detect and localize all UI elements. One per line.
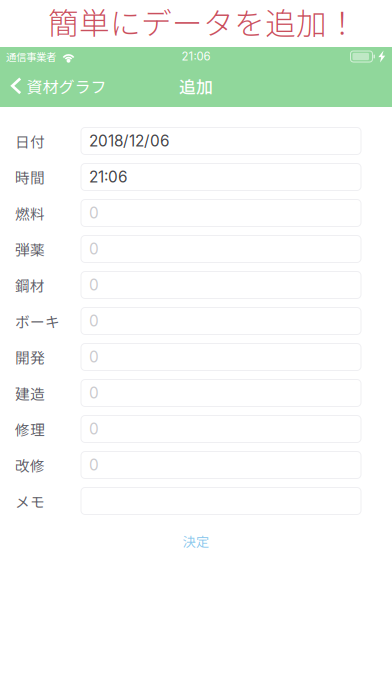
staticText: 修理 — [15, 418, 45, 440]
staticText: 開発 — [15, 346, 45, 368]
button[interactable]: メモ — [0, 483, 392, 519]
staticText: ボーキ — [15, 310, 60, 332]
staticText: 0 — [89, 348, 99, 366]
button[interactable]: 建造 — [0, 375, 392, 411]
button[interactable]: 決定 — [0, 519, 392, 563]
button[interactable]: 日付 — [0, 123, 392, 159]
staticText: 0 — [89, 240, 99, 258]
staticText: 0 — [89, 456, 99, 474]
button[interactable]: 修理 — [0, 411, 392, 447]
button[interactable]: 資材グラフ — [0, 68, 114, 107]
staticText: 追加 — [179, 74, 213, 98]
button[interactable]: 燃料 — [0, 195, 392, 231]
staticText: 21:06 — [181, 50, 210, 63]
staticText: 0 — [89, 420, 99, 438]
button[interactable]: ボーキ — [0, 303, 392, 339]
staticText: 燃料 — [15, 202, 45, 224]
button[interactable]: 改修 — [0, 447, 392, 483]
button[interactable]: 開発 — [0, 339, 392, 375]
staticText: 0 — [89, 312, 99, 330]
staticText: 時間 — [15, 166, 45, 188]
staticText: 資材グラフ — [26, 74, 106, 98]
staticText: 日付 — [15, 130, 45, 152]
button[interactable]: 時間 — [0, 159, 392, 195]
staticText: 簡単にデータを追加！ — [48, 0, 358, 44]
staticText: 弾薬 — [15, 238, 45, 260]
staticText: 0 — [89, 384, 99, 402]
button[interactable]: 鋼材 — [0, 267, 392, 303]
button[interactable]: 弾薬 — [0, 231, 392, 267]
staticText: 通信事業者 — [6, 49, 56, 64]
staticText: 2018/12/06 — [89, 132, 170, 150]
staticText: メモ — [15, 490, 45, 512]
staticText: 21:06 — [89, 168, 128, 186]
staticText: 0 — [89, 276, 99, 294]
staticText: 決定 — [183, 531, 209, 551]
staticText: 改修 — [15, 454, 45, 476]
staticText: 鋼材 — [15, 274, 45, 296]
staticText: 0 — [89, 204, 99, 222]
staticText: 建造 — [15, 382, 45, 404]
